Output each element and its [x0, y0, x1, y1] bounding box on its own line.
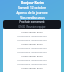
staticText: 09:30 Reunion equipe	[18, 25, 46, 29]
staticText: consectetur adipiscing elit	[17, 46, 47, 49]
staticText: Lorem ipsum dolor	[21, 30, 43, 33]
staticText: Prochain evenement	[19, 20, 45, 24]
staticText: Lorem ipsum dolor	[21, 42, 43, 45]
staticText: Vos rendez-vous	[20, 16, 45, 20]
staticText: consectetur adipiscing elit	[17, 62, 47, 65]
staticText: consectetur adipiscing elit	[17, 50, 47, 53]
staticText: consectetur adipiscing elit	[17, 58, 47, 61]
staticText: Lorem ipsum dolor	[21, 66, 43, 69]
staticText: Bonjour Karim	[21, 1, 44, 5]
staticText: Apercu de la journee	[16, 11, 48, 15]
staticText: Samedi 12 octobre	[18, 6, 46, 10]
staticText: Lorem ipsum dolor	[21, 54, 43, 57]
staticText: consectetur adipiscing elit	[17, 38, 47, 41]
staticText: consectetur adipiscing elit	[17, 34, 47, 37]
button[interactable]: Prochain evenement	[3, 20, 61, 29]
